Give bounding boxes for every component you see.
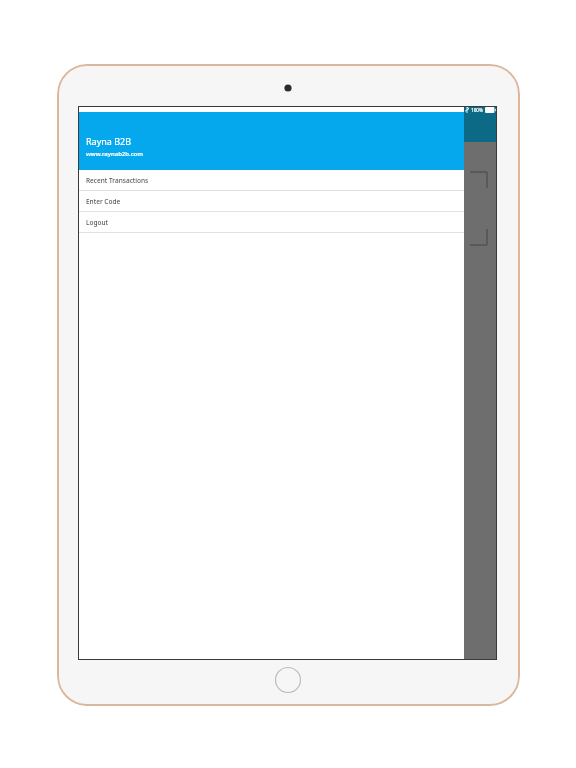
staticText: Recent Transactions bbox=[86, 176, 149, 185]
staticText: Enter Code bbox=[86, 197, 121, 206]
button[interactable]: Recent Transactions bbox=[78, 170, 464, 191]
button[interactable]: Rayna B2B bbox=[78, 112, 464, 170]
staticText: Rayna B2B bbox=[86, 135, 132, 147]
staticText: www.raynab2b.com bbox=[86, 150, 143, 158]
other: Home bbox=[272, 664, 304, 696]
button[interactable]: Logout bbox=[78, 212, 464, 233]
staticText: Logout bbox=[86, 218, 109, 227]
button[interactable]: Enter Code bbox=[78, 191, 464, 212]
staticText: 100% bbox=[471, 107, 483, 113]
